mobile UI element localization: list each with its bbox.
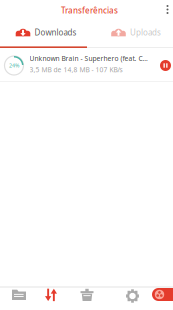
staticText: Unknown Brain - Superhero (feat. C…: [29, 54, 147, 63]
staticText: 3,5 MB de 14,8 MB - 107 KB/s: [29, 65, 122, 74]
button[interactable]: Transfers: [35, 285, 67, 305]
button[interactable]: Settings: [116, 286, 148, 306]
button[interactable]: Trash: [71, 285, 103, 305]
button[interactable]: Account: [152, 288, 173, 301]
button[interactable]: More options: [158, 0, 173, 20]
button[interactable]: Uploads: [93, 21, 173, 44]
staticText: Uploads: [130, 27, 161, 38]
button[interactable]: Files: [3, 284, 35, 304]
staticText: Transferências: [61, 5, 118, 16]
staticText: Downloads: [34, 27, 76, 38]
button[interactable]: 24%: [0, 49, 173, 81]
staticText: 24%: [9, 62, 19, 69]
button[interactable]: Downloads: [3, 21, 89, 44]
